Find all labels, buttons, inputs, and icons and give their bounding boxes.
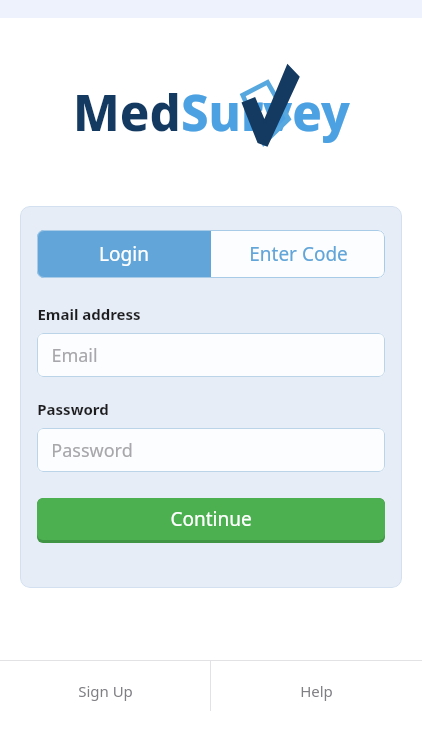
- staticText: Password: [37, 399, 109, 419]
- staticText: Login: [99, 241, 149, 267]
- staticText: Enter Code: [249, 241, 348, 267]
- staticText: Sign Up: [78, 681, 133, 701]
- button[interactable]: Sign Up: [0, 661, 210, 750]
- button[interactable]: Help: [211, 661, 422, 750]
- staticText: Med: [73, 79, 181, 146]
- staticText: Email: [51, 343, 98, 368]
- staticText: Password: [51, 438, 133, 463]
- button[interactable]: Enter Code: [211, 230, 385, 278]
- button[interactable]: Login: [37, 230, 211, 278]
- button[interactable]: Email: [37, 333, 385, 377]
- button[interactable]: Password: [37, 428, 385, 472]
- staticText: Survey: [181, 79, 350, 146]
- staticText: Continue: [170, 506, 252, 532]
- staticText: Email address: [37, 304, 141, 324]
- other: MedSurvey logo: [61, 62, 361, 162]
- button[interactable]: Continue: [37, 498, 385, 543]
- staticText: Help: [300, 681, 333, 701]
